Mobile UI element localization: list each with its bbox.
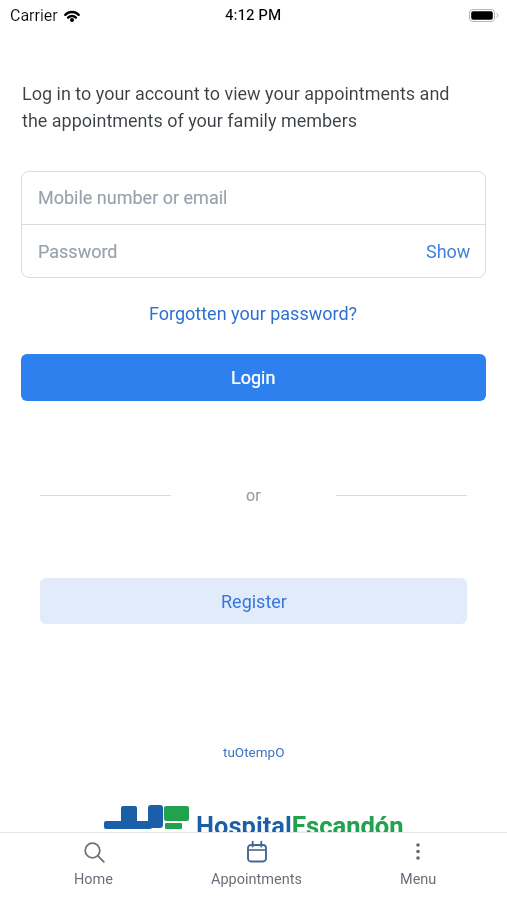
staticText: Menu xyxy=(400,871,437,888)
staticText: Appointments xyxy=(211,871,302,888)
staticText: Forgotten your password? xyxy=(149,303,358,324)
button[interactable]: Forgotten your password? xyxy=(0,303,507,324)
button[interactable]: Appointments xyxy=(175,833,337,900)
staticText: Log in to your account to view your appo… xyxy=(22,83,450,131)
staticText: Show xyxy=(426,241,471,262)
staticText: Register xyxy=(221,591,287,612)
button[interactable]: Register xyxy=(40,578,467,624)
staticText: 4:12 PM xyxy=(225,6,282,24)
button[interactable]: Mobile number or email xyxy=(21,171,486,224)
staticText: tuOtempO xyxy=(223,744,285,760)
button[interactable]: Menu xyxy=(337,833,499,900)
button[interactable]: Home xyxy=(12,833,175,900)
staticText: Password xyxy=(38,241,118,262)
staticText: HospitalEscandón xyxy=(196,811,404,841)
staticText: or xyxy=(246,486,261,505)
staticText: Login xyxy=(231,367,276,388)
button[interactable]: Login xyxy=(21,354,486,401)
button[interactable]: Show xyxy=(426,225,486,278)
staticText: Home xyxy=(74,871,114,888)
staticText: Carrier xyxy=(10,6,58,25)
button[interactable]: Password xyxy=(21,225,486,278)
staticText: Mobile number or email xyxy=(38,187,228,208)
button[interactable]: tuOtempO xyxy=(0,744,507,760)
